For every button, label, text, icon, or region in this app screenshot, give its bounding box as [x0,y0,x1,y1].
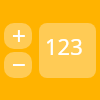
button[interactable]: Increase [4,23,32,49]
button[interactable]: 123 [39,23,96,78]
button[interactable]: Decrease [4,52,32,78]
staticText: 123 [45,31,83,61]
